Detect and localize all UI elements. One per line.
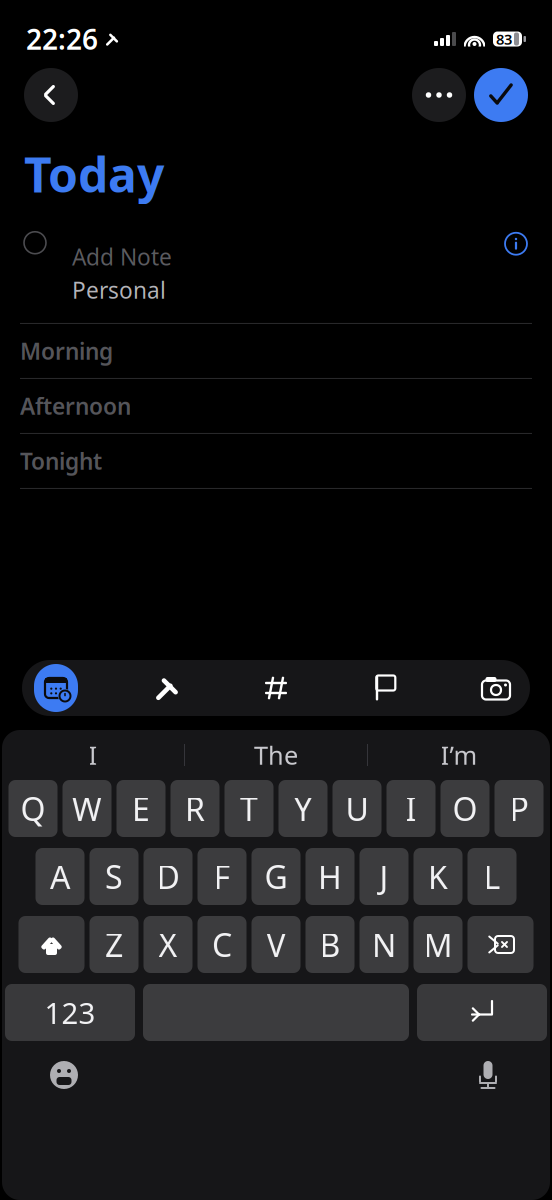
button[interactable]: I xyxy=(2,732,184,778)
button[interactable]: Attach photo xyxy=(474,664,518,712)
staticText: B xyxy=(319,923,340,966)
button[interactable]: O xyxy=(440,780,489,837)
button[interactable]: Z xyxy=(89,916,138,973)
button[interactable]: More options xyxy=(412,68,466,122)
button[interactable]: I’m xyxy=(368,732,550,778)
staticText: J xyxy=(379,855,388,898)
staticText: 83 xyxy=(496,29,512,49)
button[interactable]: Morning xyxy=(0,324,552,379)
staticText: Morning xyxy=(20,336,113,366)
button[interactable]: F xyxy=(197,848,246,905)
button[interactable]: C xyxy=(197,916,246,973)
button[interactable]: Afternoon xyxy=(0,379,552,434)
staticText: Personal xyxy=(72,275,166,305)
button[interactable]: 123 xyxy=(5,984,135,1041)
staticText: U xyxy=(345,787,368,830)
button[interactable]: Back xyxy=(24,68,78,122)
button[interactable]: Details xyxy=(504,232,528,256)
button[interactable]: L xyxy=(467,848,516,905)
staticText: Today xyxy=(24,142,164,206)
staticText: V xyxy=(266,923,285,966)
staticText: G xyxy=(264,855,287,898)
staticText: D xyxy=(156,855,179,898)
button[interactable]: G xyxy=(251,848,300,905)
staticText: Tonight xyxy=(20,446,102,476)
staticText: A xyxy=(50,855,70,898)
button[interactable]: A xyxy=(35,848,84,905)
staticText: S xyxy=(105,855,123,898)
button[interactable]: H xyxy=(305,848,354,905)
button[interactable]: X xyxy=(143,916,192,973)
button[interactable]: U xyxy=(332,780,381,837)
staticText: I’m xyxy=(440,738,477,772)
staticText: Y xyxy=(294,787,312,830)
button[interactable]: Shift xyxy=(18,916,84,973)
button[interactable]: M xyxy=(413,916,462,973)
staticText: Add Note xyxy=(72,242,172,272)
button[interactable]: Tag xyxy=(254,664,298,712)
staticText: Q xyxy=(20,787,45,830)
staticText: H xyxy=(318,855,342,898)
button[interactable]: Dictate xyxy=(464,1051,512,1099)
staticText: P xyxy=(509,787,528,830)
staticText: M xyxy=(423,923,452,966)
button[interactable]: Location xyxy=(144,664,188,712)
button[interactable]: E xyxy=(116,780,165,837)
button[interactable]: Flag xyxy=(364,664,408,712)
button[interactable]: T xyxy=(224,780,273,837)
staticText: X xyxy=(158,923,177,966)
staticText: R xyxy=(185,787,205,830)
staticText: Afternoon xyxy=(20,391,131,421)
button[interactable]: Schedule date and time xyxy=(34,664,78,712)
staticText: The xyxy=(254,738,298,772)
button[interactable]: Done xyxy=(474,68,528,122)
staticText: I xyxy=(88,738,97,772)
button[interactable]: Q xyxy=(8,780,57,837)
button[interactable]: Mark complete xyxy=(24,232,46,254)
staticText: K xyxy=(428,855,448,898)
button[interactable]: Tonight xyxy=(0,434,552,489)
staticText: O xyxy=(452,787,477,830)
button[interactable]: Return xyxy=(417,984,547,1041)
button[interactable]: W xyxy=(62,780,111,837)
button[interactable]: Y xyxy=(278,780,327,837)
button[interactable]: Delete xyxy=(467,916,533,973)
button[interactable]: V xyxy=(251,916,300,973)
staticText: L xyxy=(483,855,500,898)
button[interactable]: K xyxy=(413,848,462,905)
button[interactable]: P xyxy=(494,780,543,837)
button[interactable]: D xyxy=(143,848,192,905)
button[interactable]: I xyxy=(386,780,435,837)
button[interactable]: The xyxy=(185,732,367,778)
staticText: C xyxy=(212,923,232,966)
staticText: F xyxy=(213,855,230,898)
button[interactable]: R xyxy=(170,780,219,837)
button[interactable]: Emoji xyxy=(40,1051,88,1099)
button[interactable]: N xyxy=(359,916,408,973)
staticText: I xyxy=(405,787,416,830)
button[interactable]: B xyxy=(305,916,354,973)
staticText: Z xyxy=(105,923,123,966)
staticText: E xyxy=(132,787,150,830)
staticText: 123 xyxy=(44,993,95,1032)
staticText: T xyxy=(240,787,258,830)
staticText: 22:26 xyxy=(26,20,98,58)
staticText: W xyxy=(72,787,102,830)
button[interactable]: J xyxy=(359,848,408,905)
staticText: N xyxy=(372,923,396,966)
button[interactable]: S xyxy=(89,848,138,905)
